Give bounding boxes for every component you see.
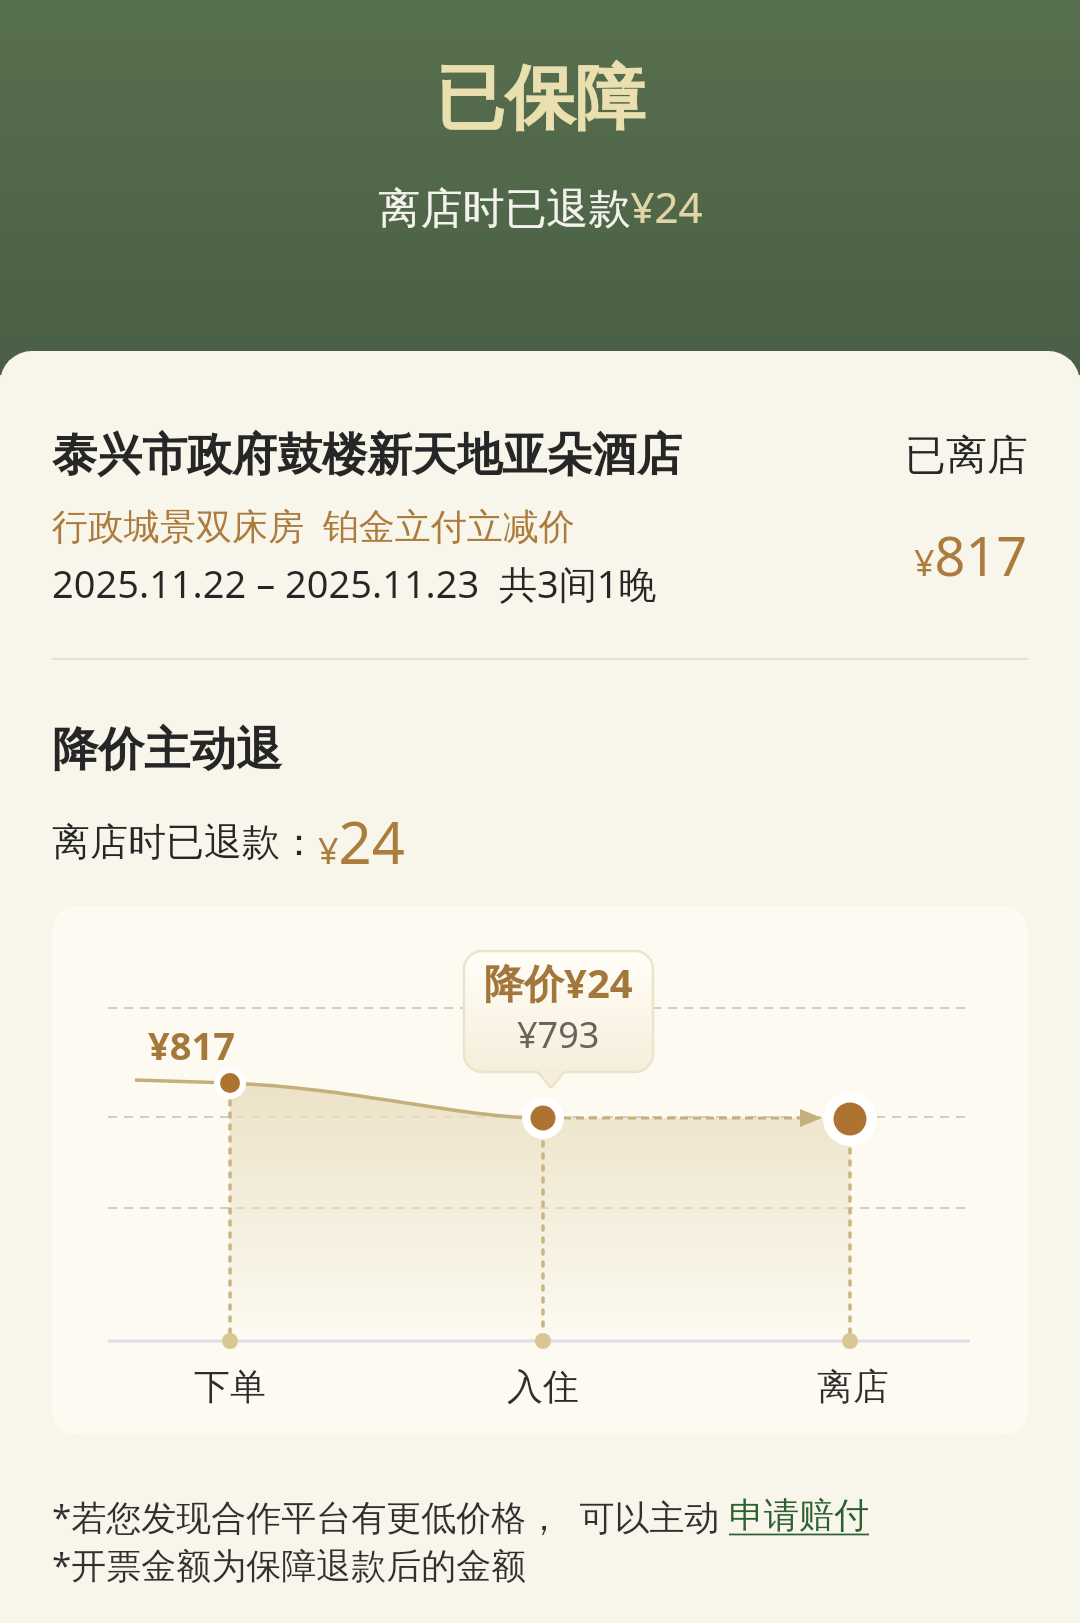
staticText: 离店时已退款： bbox=[52, 818, 318, 866]
staticText: 入住 bbox=[507, 1364, 579, 1409]
staticText: 泰兴市政府鼓楼新天地亚朵酒店 bbox=[52, 427, 905, 484]
staticText: *开票金额为保障退款后的金额 bbox=[52, 1541, 527, 1589]
staticText: 离店 bbox=[817, 1364, 889, 1409]
staticText: ¥24 bbox=[318, 802, 405, 881]
staticText: 行政城景双床房 铂金立付立减价 bbox=[52, 501, 575, 550]
staticText: ¥817 bbox=[914, 518, 1028, 592]
staticText: 离店时已退款¥24 bbox=[378, 178, 703, 235]
staticText: 已离店 bbox=[905, 430, 1028, 482]
staticText: 已保障 bbox=[435, 55, 645, 143]
staticText: ¥817 bbox=[148, 1019, 235, 1071]
button[interactable]: 申请赔付 bbox=[729, 1493, 869, 1537]
staticText: *若您发现合作平台有更低价格， 可以主动 bbox=[52, 1493, 729, 1541]
button[interactable]: 泰兴市政府鼓楼新天地亚朵酒店 bbox=[52, 427, 1028, 484]
staticText: 降价主动退 bbox=[52, 721, 282, 779]
staticText: ¥793 bbox=[517, 1010, 600, 1059]
staticText: 2025.11.22 – 2025.11.23 共3间1晚 bbox=[52, 557, 657, 609]
staticText: 下单 bbox=[194, 1364, 266, 1409]
staticText: 降价¥24 bbox=[484, 955, 633, 1010]
